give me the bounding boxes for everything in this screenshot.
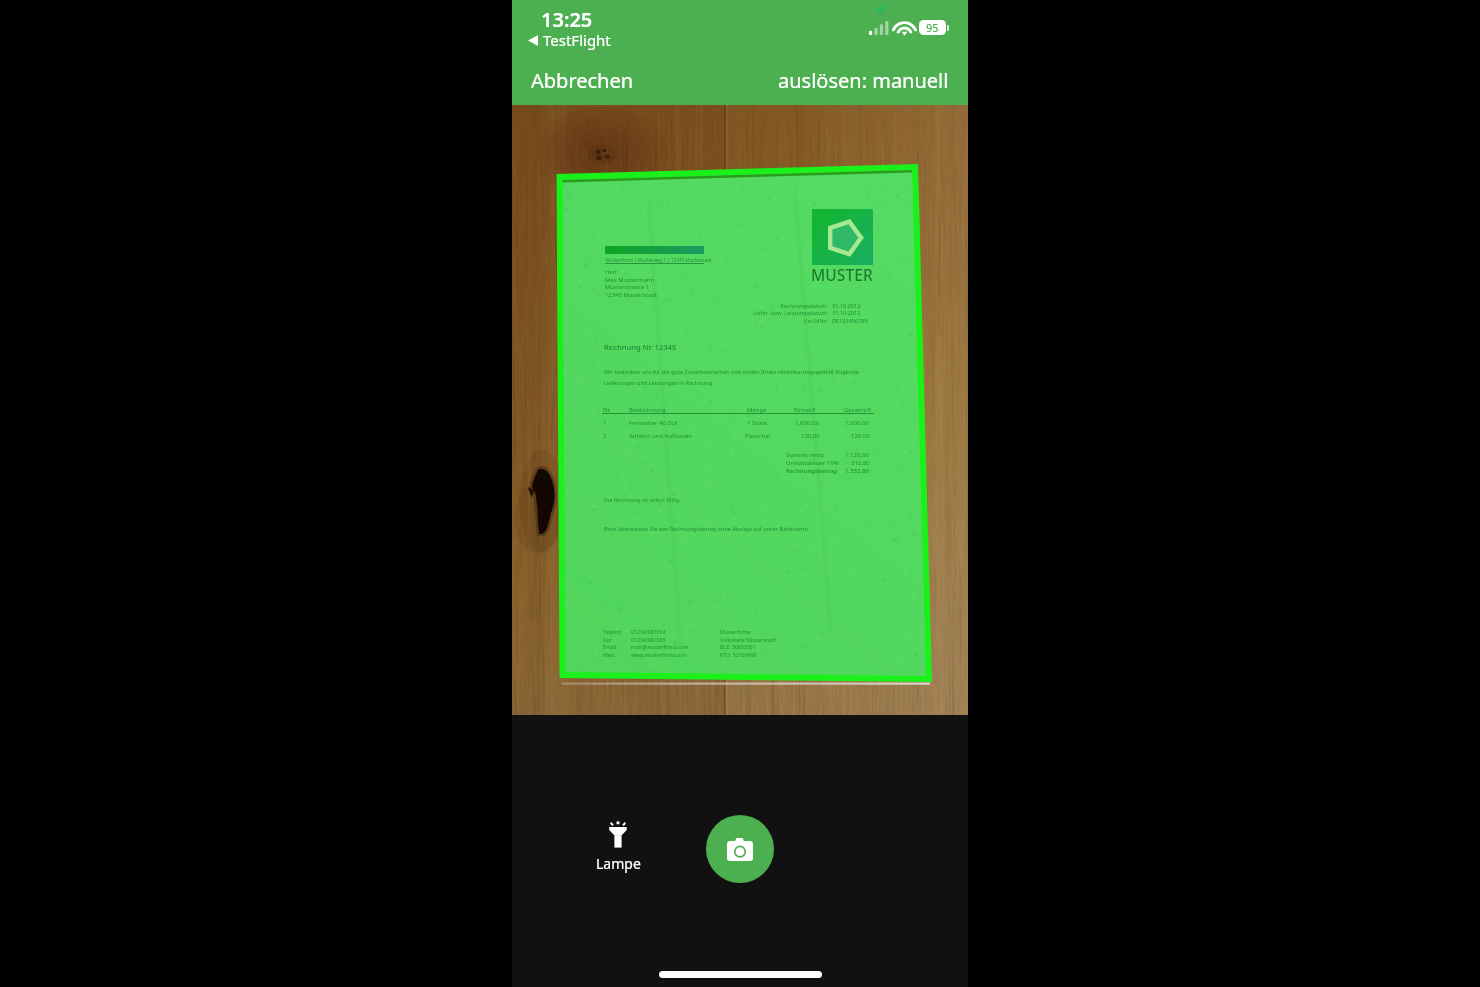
staticText: Menge — [747, 406, 767, 414]
staticText: 1.332,80 — [845, 467, 869, 475]
staticText: 1 — [603, 419, 607, 427]
button[interactable]: Zurück zu TestFlight — [528, 30, 611, 50]
staticText: Rechnungsdatum: — [780, 302, 828, 310]
staticText: 120,00 — [851, 432, 870, 440]
staticText: 1.120,00 — [845, 451, 869, 459]
staticText: Fax: — [603, 636, 613, 643]
staticText: Einzel/€ — [794, 406, 817, 414]
staticText: 01234/987654 — [631, 628, 666, 635]
staticText: Email: — [603, 643, 618, 650]
staticText: Lieferungen und Leistungen in Rechnung: — [604, 379, 714, 387]
staticText: Pauschal — [745, 432, 771, 440]
staticText: TestFlight — [543, 30, 611, 50]
staticText: 2 — [603, 432, 607, 440]
staticText: 1.000,00 — [845, 419, 869, 427]
staticText: Anfahrt und Aufbauen — [629, 432, 693, 440]
staticText: Umsatzsteuer 19% — [786, 459, 839, 467]
staticText: Musterfirma — [720, 628, 751, 635]
staticText: Liefer- bzw. Leistungsdatum: — [753, 309, 828, 317]
staticText: Fernseher 40 Zoll — [629, 419, 678, 427]
staticText: 31.10.2012 — [832, 309, 861, 317]
staticText: Web: — [603, 651, 616, 658]
staticText: 212,80 — [851, 459, 870, 467]
button[interactable]: Lampe — [588, 821, 648, 873]
staticText: Musterstrasse 1 — [605, 283, 650, 291]
staticText: 01234/987655 — [631, 636, 666, 643]
button[interactable]: auslösen: manuell — [778, 64, 949, 97]
staticText: DE123456789 — [832, 317, 868, 325]
staticText: Telefon: — [603, 628, 623, 635]
staticText: Rechnung Nr. 12345 — [604, 342, 677, 352]
staticText: Summe netto — [786, 451, 825, 459]
staticText: Die Rechnung ist sofort fällig. — [604, 496, 681, 504]
staticText: 31.10.2012 — [832, 302, 861, 310]
staticText: BLZ: 30033301 — [720, 643, 756, 650]
staticText: mail@musterfirma.com — [631, 643, 689, 650]
staticText: Ust-IdNr.: — [803, 317, 828, 325]
staticText: Rechnungsbetrag — [786, 467, 837, 475]
staticText: www.musterfirma.com — [631, 651, 687, 658]
staticText: Musterfirma | Musterweg 1 | 12345 Muster… — [606, 257, 712, 263]
staticText: Herr — [605, 268, 618, 276]
staticText: 1.000,00 — [795, 419, 819, 427]
staticText: 13:25 — [541, 6, 593, 33]
button[interactable]: Abbrechen — [531, 64, 634, 97]
staticText: 1 Stück — [747, 419, 768, 427]
staticText: MUSTER — [811, 264, 873, 285]
staticText: Bezeichnung — [629, 406, 666, 414]
staticText: Bitte überweisen Sie den Rechnungsbetrag… — [604, 525, 810, 533]
staticText: 120,00 — [801, 432, 820, 440]
staticText: Wir bedanken uns für die gute Zusammenar… — [604, 368, 859, 376]
staticText: 95 — [926, 20, 939, 35]
button[interactable]: Auslöser — [706, 815, 774, 883]
staticText: Lampe — [596, 854, 641, 873]
staticText: Volksbank Musterstadt — [720, 636, 776, 643]
staticText: 12345 Musterstadt — [605, 291, 658, 299]
staticText: Abbrechen — [531, 67, 634, 94]
staticText: Max Mustermann — [605, 276, 655, 284]
staticText: KTO: 32165498 — [720, 651, 757, 658]
staticText: auslösen: manuell — [778, 67, 949, 94]
staticText: Gesamt/€ — [844, 406, 872, 414]
staticText: Nr. — [603, 406, 611, 414]
